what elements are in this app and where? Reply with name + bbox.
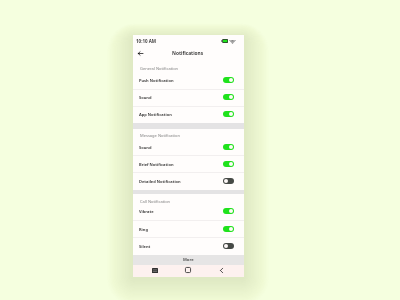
button[interactable]: Vibrate — [133, 203, 244, 220]
button[interactable]: Silent — [133, 238, 244, 255]
button[interactable]: Toggle on — [223, 94, 234, 100]
button[interactable]: Toggle on — [223, 226, 234, 232]
staticText: Silent — [139, 244, 151, 249]
button[interactable]: Recents — [149, 264, 160, 276]
staticText: Vibrate — [139, 209, 154, 214]
button[interactable]: Toggle on — [223, 77, 234, 83]
staticText: Call Notification — [140, 199, 171, 205]
button[interactable]: Toggle on — [223, 208, 234, 214]
button[interactable]: Home — [182, 264, 193, 276]
staticText: Detailed Notification — [139, 179, 181, 184]
button[interactable]: Back — [216, 264, 227, 276]
button[interactable]: Toggle off — [223, 243, 234, 249]
button[interactable]: Toggle on — [223, 144, 234, 150]
button[interactable]: Ring — [133, 221, 244, 238]
staticText: Notifications — [172, 50, 204, 57]
button[interactable]: Toggle off — [223, 178, 234, 184]
button[interactable]: Toggle on — [223, 161, 234, 167]
button[interactable]: App Notification — [133, 106, 244, 123]
button[interactable]: Toggle on — [223, 111, 234, 117]
staticText: Ring — [139, 227, 148, 232]
button[interactable]: Sound — [133, 89, 244, 106]
staticText: Push Notification — [139, 78, 174, 83]
staticText: Sound — [139, 145, 152, 150]
staticText: Message Notification — [140, 133, 181, 139]
button[interactable]: Back — [135, 48, 145, 58]
button[interactable]: Brief Notification — [133, 156, 244, 173]
staticText: Brief Notification — [139, 162, 174, 167]
staticText: More — [183, 257, 194, 263]
staticText: App Notification — [139, 112, 172, 117]
staticText: 10:10 AM — [136, 38, 157, 44]
button[interactable]: Detailed Notification — [133, 173, 244, 190]
button[interactable]: More — [133, 257, 244, 265]
staticText: Sound — [139, 95, 152, 100]
button[interactable]: Push Notification — [133, 72, 244, 89]
staticText: General Notification — [140, 66, 179, 72]
button[interactable]: Sound — [133, 139, 244, 156]
